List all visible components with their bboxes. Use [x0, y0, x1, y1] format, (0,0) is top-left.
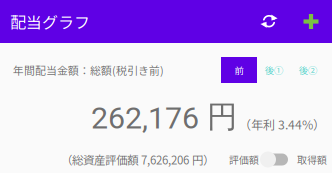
button[interactable]: Toggle valuation or acquisition amount [259, 151, 297, 167]
staticText: 262,176 円 [91, 98, 237, 136]
button[interactable]: 後② [291, 57, 325, 83]
staticText: （総資産評価額 7,626,206 円） [61, 151, 214, 168]
staticText: 前 [234, 63, 243, 77]
button[interactable]: Add [291, 1, 331, 41]
staticText: 配当グラフ [10, 10, 90, 33]
staticText: 取得額 [297, 152, 327, 167]
staticText: 年間配当金額：総額(税引き前) [13, 62, 164, 78]
staticText: 後① [265, 63, 283, 77]
staticText: （年利 3.44%） [239, 115, 325, 133]
staticText: 評価額 [229, 152, 259, 167]
button[interactable]: Refresh [249, 1, 289, 41]
button[interactable]: 後① [257, 57, 291, 83]
button[interactable]: 前 [221, 57, 257, 83]
staticText: 後② [299, 63, 317, 77]
